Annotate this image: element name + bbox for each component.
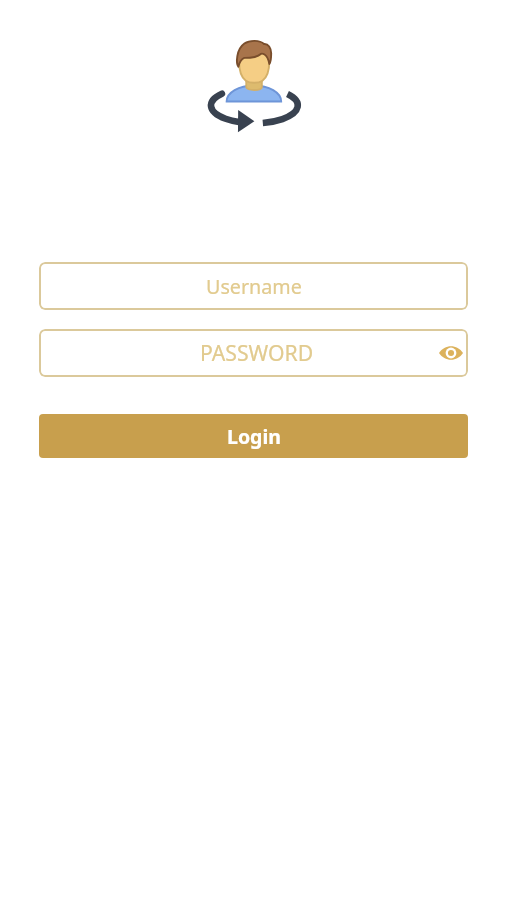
staticText: Login xyxy=(227,423,281,450)
button[interactable]: Show password xyxy=(434,336,468,370)
staticText: PASSWORD xyxy=(200,338,314,367)
staticText: Username xyxy=(206,273,302,300)
button[interactable]: PASSWORD xyxy=(39,329,468,377)
button[interactable]: Login xyxy=(39,414,468,458)
button[interactable]: Username xyxy=(39,262,468,310)
